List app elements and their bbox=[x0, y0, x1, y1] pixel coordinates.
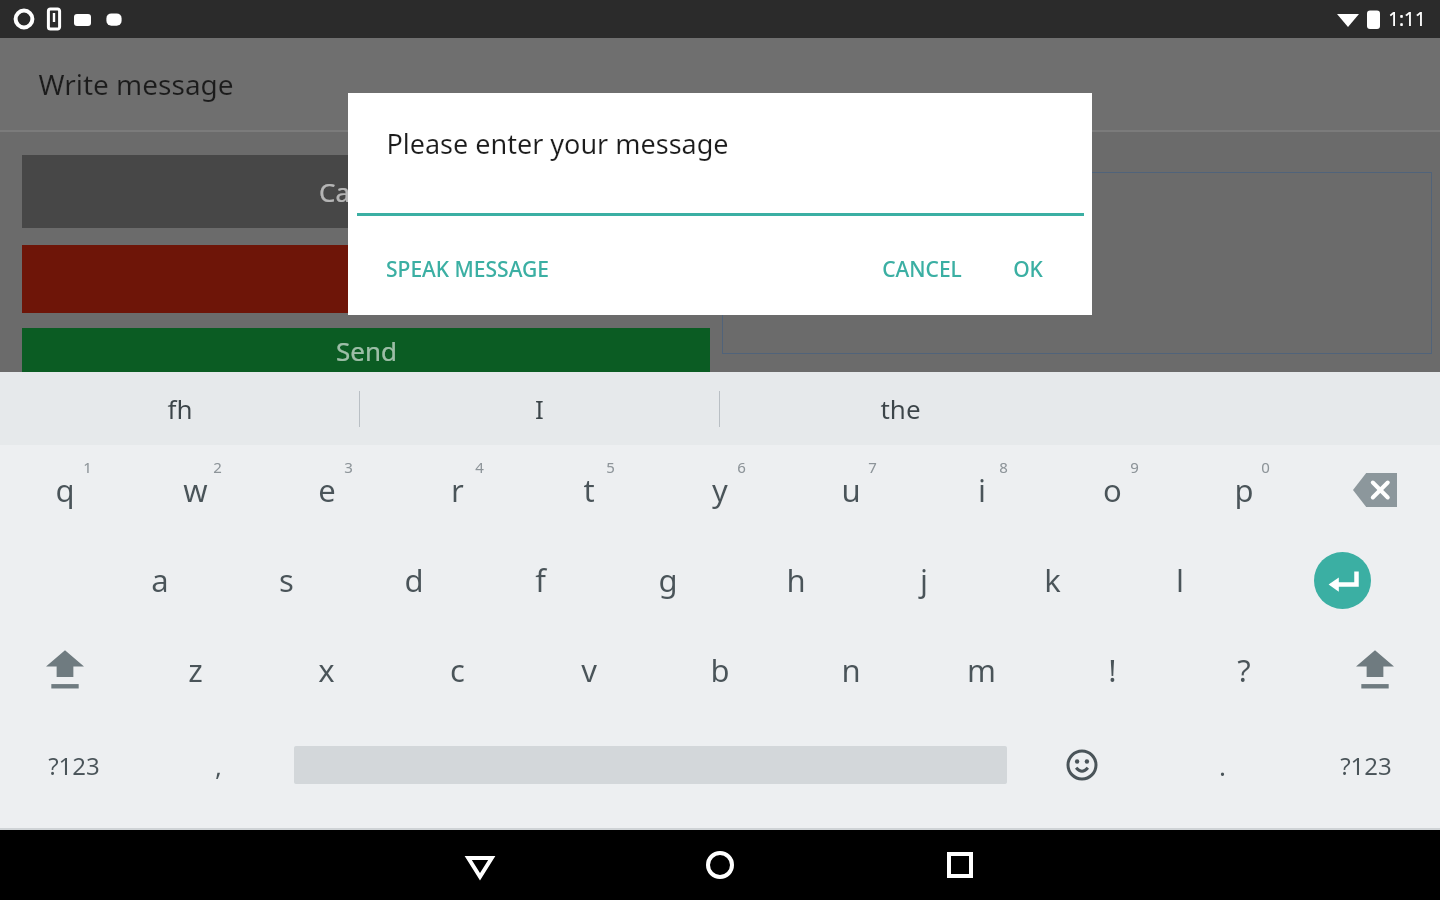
staticText: OK bbox=[1013, 255, 1043, 284]
staticText: q bbox=[55, 469, 75, 511]
staticText: h bbox=[786, 559, 806, 601]
button[interactable]: Backspace bbox=[1309, 445, 1440, 535]
staticText: e bbox=[318, 469, 336, 511]
staticText: CANCEL bbox=[882, 255, 962, 284]
button[interactable]: c bbox=[392, 625, 523, 715]
staticText: d bbox=[404, 559, 424, 601]
button[interactable]: Back bbox=[420, 830, 540, 900]
staticText: p bbox=[1234, 469, 1254, 511]
button[interactable]: ? bbox=[1178, 625, 1309, 715]
staticText: SPEAK MESSAGE bbox=[386, 255, 549, 284]
staticText: I bbox=[535, 391, 544, 426]
button[interactable]: Space bbox=[288, 715, 1012, 815]
staticText: 5 bbox=[606, 457, 615, 477]
button[interactable]: e bbox=[261, 445, 392, 535]
staticText: , bbox=[215, 748, 222, 783]
staticText: 4 bbox=[475, 457, 484, 477]
button[interactable]: ?123 bbox=[0, 715, 148, 815]
button[interactable]: Send bbox=[22, 328, 710, 372]
staticText: ?123 bbox=[1340, 749, 1392, 782]
button[interactable]: n bbox=[785, 625, 916, 715]
button[interactable]: w bbox=[130, 445, 261, 535]
staticText: . bbox=[1219, 748, 1226, 783]
staticText: t bbox=[583, 469, 595, 511]
button[interactable]: ! bbox=[1047, 625, 1178, 715]
staticText: s bbox=[279, 559, 294, 601]
staticText: 8 bbox=[999, 457, 1008, 477]
staticText: Write message bbox=[38, 65, 234, 103]
staticText: c bbox=[450, 649, 465, 691]
button[interactable]: Emoji bbox=[1012, 715, 1152, 815]
button[interactable]: Ca bbox=[22, 245, 710, 313]
button[interactable]: u bbox=[785, 445, 916, 535]
button[interactable]: g bbox=[604, 535, 732, 625]
button[interactable]: b bbox=[654, 625, 785, 715]
staticText: 1:11 bbox=[1388, 6, 1426, 32]
staticText: ?123 bbox=[48, 749, 100, 782]
staticText: fh bbox=[167, 391, 193, 426]
button[interactable]: j bbox=[860, 535, 988, 625]
staticText: n bbox=[841, 649, 861, 691]
button[interactable]: ?123 bbox=[1292, 715, 1440, 815]
button[interactable]: l bbox=[1116, 535, 1244, 625]
staticText: o bbox=[1103, 469, 1122, 511]
button[interactable]: . bbox=[1152, 715, 1292, 815]
button[interactable]: h bbox=[732, 535, 860, 625]
staticText: ! bbox=[1108, 649, 1117, 691]
button[interactable]: CANCEL bbox=[882, 255, 962, 284]
staticText: Please enter your message bbox=[386, 125, 729, 162]
button[interactable]: x bbox=[261, 625, 392, 715]
staticText: w bbox=[183, 469, 208, 511]
staticText: j bbox=[920, 559, 928, 601]
staticText: r bbox=[451, 469, 464, 511]
button[interactable]: i bbox=[916, 445, 1047, 535]
button[interactable]: f bbox=[477, 535, 604, 625]
button[interactable]: z bbox=[130, 625, 261, 715]
staticText: Canned bbox=[319, 174, 413, 209]
staticText: 7 bbox=[868, 457, 877, 477]
button[interactable]: o bbox=[1047, 445, 1178, 535]
button[interactable]: Shift bbox=[0, 625, 130, 715]
button[interactable]: Recents bbox=[900, 830, 1020, 900]
button[interactable]: y bbox=[654, 445, 785, 535]
staticText: ? bbox=[1237, 649, 1251, 691]
button[interactable]: m bbox=[916, 625, 1047, 715]
button[interactable]: Enter bbox=[1244, 535, 1440, 625]
button[interactable]: the bbox=[720, 372, 1080, 445]
staticText: the bbox=[880, 391, 921, 426]
button[interactable]: I bbox=[360, 372, 719, 445]
staticText: a bbox=[151, 559, 169, 601]
staticText: b bbox=[710, 649, 730, 691]
staticText: u bbox=[841, 469, 861, 511]
button[interactable]: t bbox=[523, 445, 654, 535]
button[interactable]: p bbox=[1178, 445, 1309, 535]
button[interactable]: k bbox=[988, 535, 1116, 625]
staticText: 0 bbox=[1261, 457, 1270, 477]
staticText: i bbox=[978, 469, 986, 511]
button[interactable]: fh bbox=[0, 372, 359, 445]
staticText: v bbox=[581, 649, 597, 691]
staticText: f bbox=[535, 559, 546, 601]
button[interactable]: , bbox=[148, 715, 288, 815]
button[interactable]: Shift bbox=[1309, 625, 1440, 715]
button[interactable]: OK bbox=[1013, 255, 1043, 284]
button[interactable]: v bbox=[523, 625, 654, 715]
staticText: z bbox=[188, 649, 203, 691]
staticText: 3 bbox=[344, 457, 353, 477]
button[interactable]: a bbox=[96, 535, 223, 625]
staticText: 6 bbox=[737, 457, 746, 477]
button[interactable]: d bbox=[350, 535, 477, 625]
button[interactable]: s bbox=[223, 535, 350, 625]
staticText: 1 bbox=[83, 457, 92, 477]
button[interactable]: Canned bbox=[22, 155, 710, 228]
button[interactable]: Home bbox=[660, 830, 780, 900]
staticText: 9 bbox=[1130, 457, 1139, 477]
staticText: Send bbox=[336, 333, 397, 368]
staticText: x bbox=[318, 649, 335, 691]
button[interactable]: q bbox=[0, 445, 130, 535]
staticText: l bbox=[1176, 559, 1184, 601]
staticText: k bbox=[1044, 559, 1061, 601]
button[interactable]: SPEAK MESSAGE bbox=[386, 255, 549, 284]
button[interactable]: r bbox=[392, 445, 523, 535]
